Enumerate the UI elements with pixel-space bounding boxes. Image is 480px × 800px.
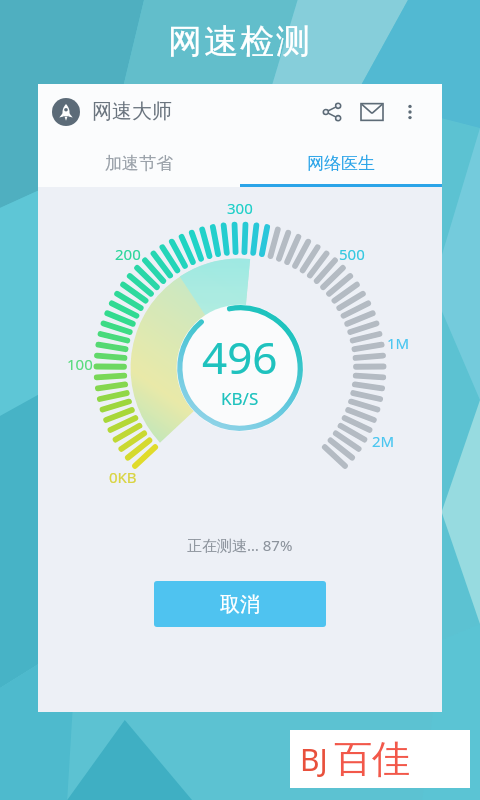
staticText: 网络医生 <box>307 153 375 174</box>
staticText: 500 <box>339 244 365 264</box>
staticText: 百佳 <box>334 735 410 783</box>
staticText: 0KB <box>109 467 137 487</box>
staticText: 取消 <box>220 592 260 617</box>
staticText: BJ <box>300 739 328 780</box>
button[interactable]: 网络医生 <box>240 139 442 187</box>
staticText: 496 <box>202 327 278 387</box>
staticText: KB/S <box>221 387 259 410</box>
button[interactable]: App icon <box>52 98 80 126</box>
staticText: 加速节省 <box>105 153 173 174</box>
button[interactable]: 加速节省 <box>38 139 240 187</box>
button[interactable]: 取消 <box>154 581 326 627</box>
button[interactable]: More options <box>392 94 428 130</box>
staticText: 2M <box>372 431 395 451</box>
staticText: 1M <box>387 333 410 353</box>
button[interactable]: Mail <box>352 92 392 132</box>
staticText: 300 <box>227 198 253 218</box>
staticText: 200 <box>115 244 141 264</box>
staticText: 正在测速… 87% <box>187 535 293 555</box>
button[interactable]: Share <box>312 92 352 132</box>
staticText: 网速大师 <box>92 99 172 124</box>
staticText: 网速检测 <box>0 20 480 63</box>
staticText: 100 <box>67 354 93 374</box>
